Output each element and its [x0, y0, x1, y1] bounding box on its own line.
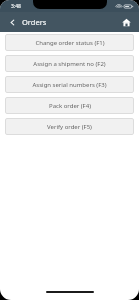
button[interactable]: Pack order (F4) [5, 97, 134, 114]
button[interactable]: Change order status (F1) [5, 34, 134, 51]
button[interactable]: Assign serial numbers (F3) [5, 76, 134, 93]
staticText: Pack order (F4) [49, 102, 91, 110]
button[interactable]: Assign a shipment no (F2) [5, 55, 134, 72]
button[interactable]: Verify order (F5) [5, 118, 134, 135]
staticText: 3:48 [11, 3, 21, 10]
staticText: Change order status (F1) [35, 39, 105, 47]
staticText: Orders [22, 17, 47, 27]
staticText: Assign serial numbers (F3) [32, 81, 107, 89]
staticText: Assign a shipment no (F2) [33, 60, 106, 68]
button[interactable]: Back [5, 15, 19, 29]
button[interactable]: Home [118, 14, 134, 30]
staticText: Verify order (F5) [47, 123, 92, 131]
